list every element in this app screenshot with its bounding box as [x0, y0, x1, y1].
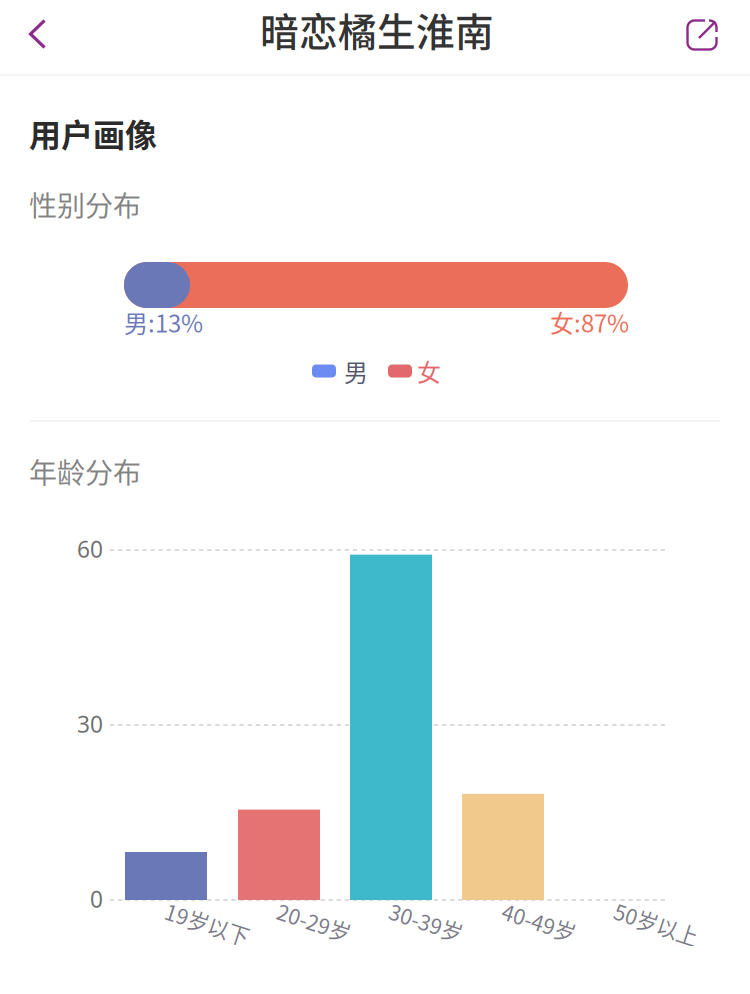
- button[interactable]: Share: [672, 0, 750, 73]
- staticText: 19岁以下: [172, 896, 259, 926]
- staticText: 30: [77, 709, 103, 739]
- staticText: 男: [344, 354, 368, 388]
- staticText: 性别分布: [29, 184, 141, 224]
- staticText: 40-49岁: [509, 896, 585, 926]
- staticText: 20-29岁: [284, 896, 360, 926]
- staticText: 男:13%: [124, 305, 203, 339]
- staticText: 女:87%: [550, 305, 629, 339]
- staticText: 用户画像: [29, 110, 157, 156]
- staticText: 女: [417, 354, 441, 388]
- staticText: 60: [77, 534, 103, 564]
- staticText: 年龄分布: [29, 451, 141, 491]
- staticText: 0: [90, 884, 103, 914]
- button[interactable]: Back: [0, 0, 72, 73]
- staticText: 30-39岁: [396, 896, 472, 926]
- staticText: 暗恋橘生淮南: [260, 1, 494, 57]
- staticText: 50岁以上: [621, 896, 708, 926]
